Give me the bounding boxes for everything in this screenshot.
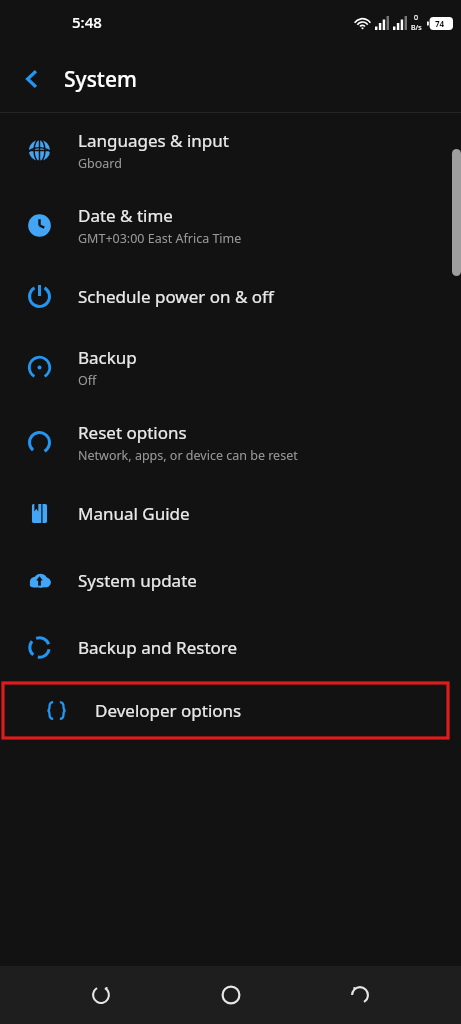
staticText: Languages & input — [78, 129, 229, 152]
button[interactable]: Back — [73, 967, 129, 1023]
staticText: Off — [78, 372, 97, 389]
staticText: Backup and Restore — [78, 636, 238, 659]
staticText: Backup — [78, 346, 137, 369]
button[interactable]: Schedule power on & off — [0, 263, 461, 330]
staticText: Date & time — [78, 204, 173, 227]
button[interactable]: Manual Guide — [0, 480, 461, 547]
button[interactable]: Recent apps — [332, 967, 388, 1023]
staticText: System update — [78, 569, 197, 592]
button[interactable]: Home — [203, 967, 259, 1023]
button[interactable]: Backup — [0, 330, 461, 405]
staticText: 74 — [435, 18, 445, 29]
staticText: GMT+03:00 East Africa Time — [78, 230, 242, 247]
button[interactable]: Developer options — [17, 683, 448, 738]
button[interactable]: Reset options — [0, 405, 461, 480]
staticText: Reset options — [78, 421, 187, 444]
button[interactable]: Back — [10, 57, 54, 101]
button[interactable]: Backup and Restore — [0, 614, 461, 681]
staticText: System — [64, 65, 137, 94]
staticText: Manual Guide — [78, 502, 190, 525]
staticText: 5:48 — [72, 12, 102, 32]
staticText: Network, apps, or device can be reset — [78, 447, 298, 464]
staticText: Developer options — [95, 699, 242, 722]
button[interactable]: Date & time — [0, 188, 461, 263]
staticText: Schedule power on & off — [78, 285, 274, 308]
button[interactable]: Languages & input — [0, 113, 461, 188]
staticText: Gboard — [78, 155, 122, 172]
button[interactable]: System update — [0, 547, 461, 614]
staticText: 0 — [414, 13, 419, 23]
staticText: B/s — [411, 23, 422, 33]
